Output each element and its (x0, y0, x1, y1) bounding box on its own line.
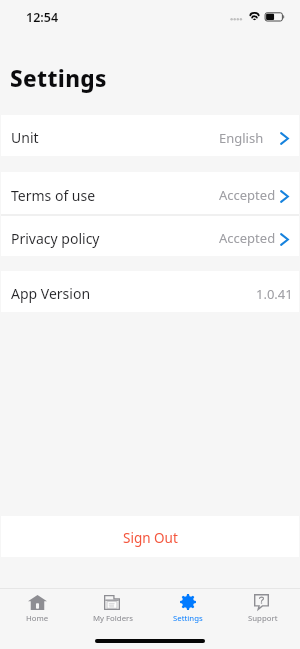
staticText: English (219, 129, 264, 147)
staticText: Unit (11, 128, 39, 147)
button[interactable]: Settings (150, 589, 225, 630)
button[interactable]: My Folders (75, 589, 150, 630)
staticText: Home (26, 613, 49, 624)
staticText: Settings (10, 63, 107, 94)
staticText: Privacy policy (11, 229, 100, 248)
staticText: 12:54 (26, 9, 59, 26)
button[interactable]: Sign Out (1, 516, 299, 557)
staticText: Settings (173, 613, 203, 624)
other: Battery (264, 11, 286, 21)
staticText: Terms of use (11, 186, 96, 205)
other: Wi-Fi (248, 11, 261, 22)
staticText: Support (248, 613, 278, 624)
staticText: Sign Out (123, 529, 178, 547)
staticText: App Version (11, 284, 91, 303)
button[interactable]: App Version (1, 271, 299, 312)
button[interactable]: Home (0, 589, 75, 630)
staticText: My Folders (93, 613, 133, 624)
button[interactable]: Support (225, 589, 300, 630)
button[interactable]: Unit (1, 115, 299, 156)
staticText: Accepted (219, 229, 276, 247)
staticText: Accepted (219, 186, 276, 204)
button[interactable]: Privacy policy (1, 216, 299, 256)
staticText: 1.0.41 (256, 285, 293, 303)
button[interactable]: Terms of use (1, 172, 299, 214)
